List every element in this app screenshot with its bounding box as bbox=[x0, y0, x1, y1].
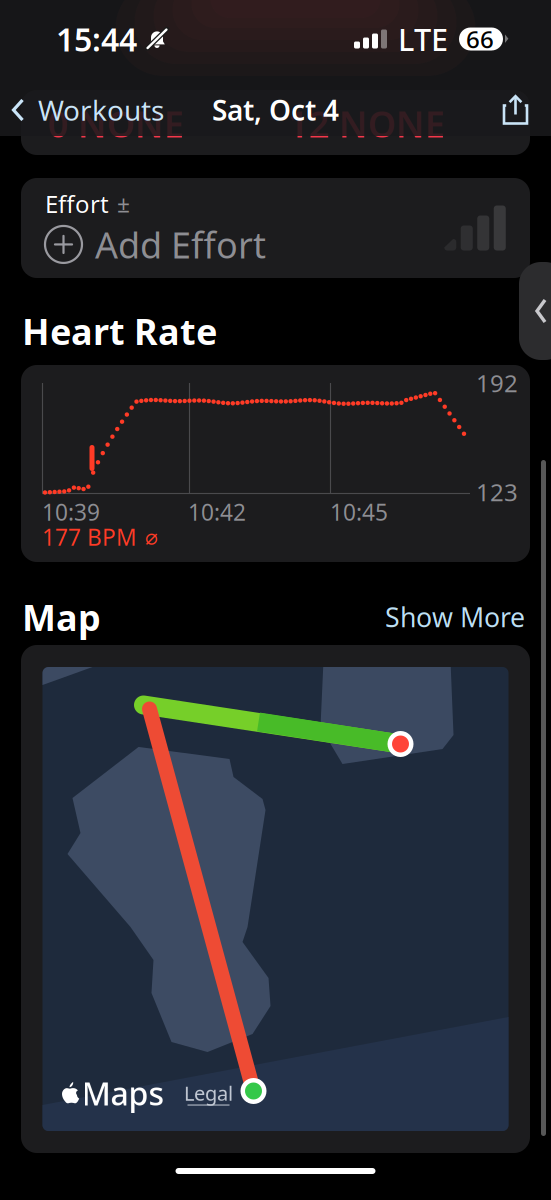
staticText: ± bbox=[117, 188, 130, 219]
staticText: Show More bbox=[385, 599, 525, 635]
staticText: Workouts bbox=[38, 91, 164, 129]
staticText: 10:45 bbox=[330, 497, 388, 527]
staticText: Maps bbox=[81, 1072, 164, 1114]
staticText: ⌀ bbox=[145, 525, 158, 549]
staticText: 12 NONE bbox=[288, 100, 445, 147]
staticText: Sat, Oct 4 bbox=[212, 91, 339, 129]
staticText: Effort bbox=[45, 188, 109, 220]
staticText: 10:39 bbox=[42, 497, 100, 527]
staticText: 66 bbox=[466, 23, 494, 55]
staticText: 0 NONE bbox=[48, 100, 184, 147]
staticText: 10:42 bbox=[188, 497, 246, 527]
staticText: 123 bbox=[476, 476, 518, 508]
button[interactable]: Show More bbox=[381, 593, 529, 641]
staticText: 192 bbox=[476, 367, 518, 399]
button[interactable]: Expand panel bbox=[519, 262, 551, 360]
staticText: Map bbox=[22, 593, 101, 641]
button[interactable]: Share bbox=[488, 86, 551, 134]
staticText: Legal bbox=[184, 1080, 233, 1106]
staticText: 177 BPM bbox=[42, 522, 137, 552]
button[interactable]: Workouts bbox=[0, 81, 176, 139]
staticText: 15:44 bbox=[56, 18, 137, 60]
button[interactable]: Effort bbox=[21, 178, 530, 278]
staticText: Add Effort bbox=[95, 220, 266, 268]
staticText: LTE bbox=[398, 19, 448, 59]
staticText: Heart Rate bbox=[22, 307, 217, 355]
